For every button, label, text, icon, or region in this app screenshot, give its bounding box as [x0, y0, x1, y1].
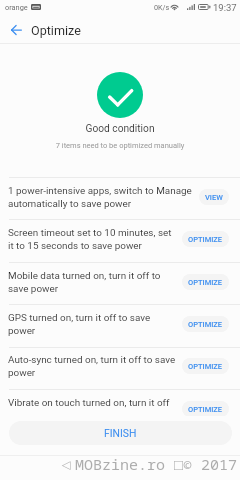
staticText: orange	[5, 3, 28, 12]
staticText: OPTIMIZE	[188, 278, 223, 287]
staticText: Auto-sync turned on, turn it off to save…	[8, 354, 179, 379]
staticText: ◁MOBzine.ro □© 2017	[57, 454, 240, 474]
staticText: Optimize	[31, 23, 81, 38]
staticText: OPTIMIZE	[188, 320, 223, 329]
button[interactable]: OPTIMIZE	[182, 401, 229, 416]
button[interactable]: OPTIMIZE	[182, 274, 229, 290]
staticText: GPS turned on, turn it off to save power	[8, 312, 179, 337]
button[interactable]: OPTIMIZE	[182, 231, 229, 247]
button[interactable]: Screen timeout set to 10 minutes, set it…	[0, 220, 240, 262]
button[interactable]: OPTIMIZE	[182, 316, 229, 332]
staticText: 1 power-intensive apps, switch to Manage…	[8, 185, 196, 210]
staticText: Screen timeout set to 10 minutes, set it…	[8, 227, 179, 252]
button[interactable]: Back	[3, 17, 29, 43]
button[interactable]: GPS turned on, turn it off to save power	[0, 305, 240, 347]
button[interactable]: FINISH	[9, 421, 232, 445]
staticText: 19:37	[213, 2, 237, 13]
button[interactable]: Mobile data turned on, turn it off to sa…	[0, 263, 240, 305]
staticText: Vibrate on touch turned on, turn it off	[8, 397, 179, 409]
button[interactable]: 1 power-intensive apps, switch to Manage…	[0, 178, 240, 220]
staticText: VIEW	[205, 193, 223, 202]
button[interactable]: OPTIMIZE	[182, 358, 229, 374]
button[interactable]: VIEW	[199, 189, 229, 205]
staticText: 7 items need to be optimized manually	[0, 141, 240, 150]
staticText: OPTIMIZE	[188, 362, 223, 371]
staticText: 0K/s	[154, 3, 170, 11]
staticText: Good condition	[0, 123, 240, 135]
button[interactable]: Vibrate on touch turned on, turn it off	[0, 390, 240, 416]
button[interactable]: Auto-sync turned on, turn it off to save…	[0, 347, 240, 389]
staticText: OPTIMIZE	[188, 405, 223, 414]
staticText: OPTIMIZE	[188, 235, 223, 244]
staticText: FINISH	[104, 427, 137, 439]
staticText: Mobile data turned on, turn it off to sa…	[8, 270, 179, 295]
